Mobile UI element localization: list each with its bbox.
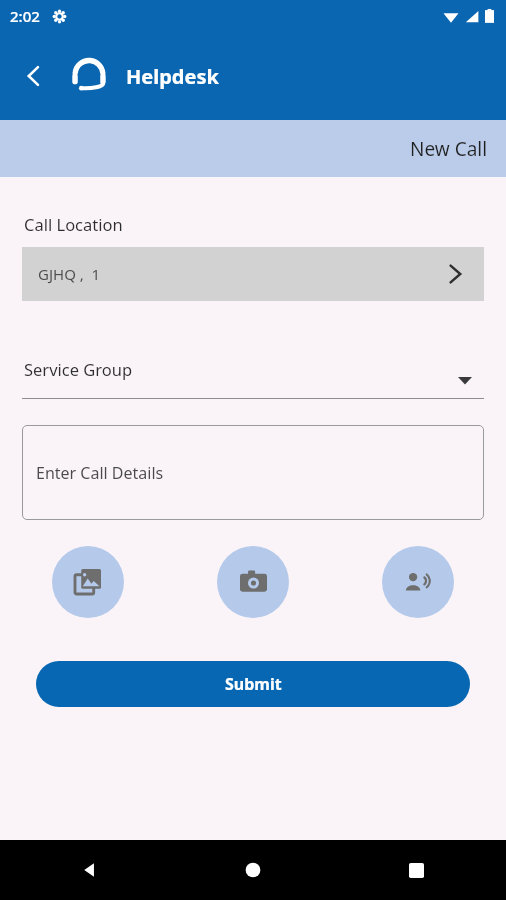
button[interactable]: Enter Call Details — [22, 425, 484, 520]
button[interactable]: Submit — [36, 661, 470, 707]
button[interactable]: New Call — [0, 120, 506, 177]
button[interactable]: Pick image from gallery — [52, 546, 124, 618]
button[interactable]: Take photo — [217, 546, 289, 618]
staticText: 2:02 — [10, 6, 40, 26]
button[interactable]: Service Group — [22, 351, 484, 399]
staticText: Submit — [225, 673, 282, 695]
staticText: Call Location — [24, 213, 123, 235]
button[interactable]: Home — [233, 850, 273, 890]
button[interactable]: Recents — [396, 850, 436, 890]
button[interactable]: Back — [14, 56, 54, 96]
staticText: Enter Call Details — [36, 462, 164, 484]
button[interactable]: GJHQ , 1 — [22, 247, 484, 301]
button[interactable]: Record voice — [382, 546, 454, 618]
staticText: Helpdesk — [126, 63, 219, 90]
staticText: Service Group — [24, 358, 133, 380]
button[interactable]: Back — [70, 850, 110, 890]
staticText: GJHQ , 1 — [38, 264, 101, 284]
staticText: New Call — [410, 136, 488, 162]
